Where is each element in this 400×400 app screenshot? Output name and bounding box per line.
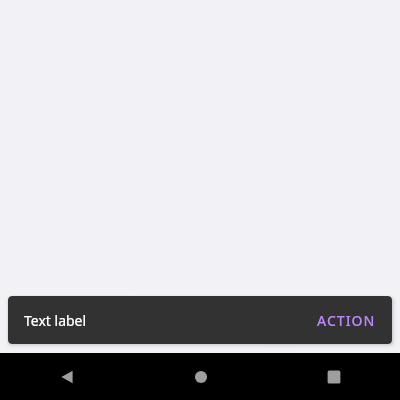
button[interactable]: ACTION [309, 305, 384, 336]
button[interactable]: Back [0, 353, 134, 400]
button[interactable]: Recent apps [267, 353, 400, 400]
button[interactable]: Text label [8, 296, 392, 344]
staticText: Text label [24, 311, 87, 330]
staticText: ACTION [317, 311, 376, 330]
button[interactable]: Home [134, 353, 267, 400]
